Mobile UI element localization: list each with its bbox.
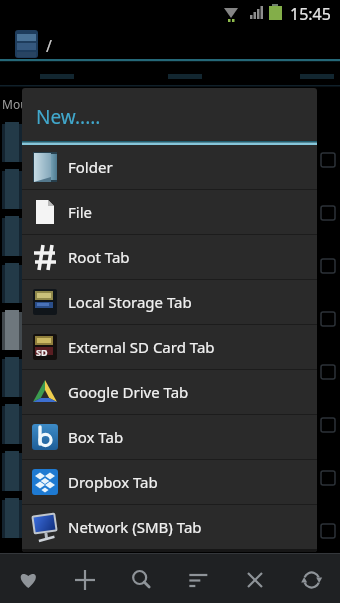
staticText: Folder <box>68 157 113 177</box>
button[interactable]: Box Tab <box>22 415 317 459</box>
button[interactable] <box>0 553 56 603</box>
staticText: 15:45 <box>290 3 331 25</box>
staticText: New..... <box>36 104 101 130</box>
button[interactable]: SD <box>22 325 317 369</box>
staticText: File <box>68 202 92 222</box>
button[interactable]: Local Storage Tab <box>22 280 317 324</box>
button[interactable]: Network (SMB) Tab <box>22 505 317 549</box>
button[interactable]: Google Drive Tab <box>22 370 317 414</box>
staticText: Dropbox Tab <box>68 472 158 492</box>
staticText: Root Tab <box>68 247 130 267</box>
button[interactable]: Dropbox Tab <box>22 460 317 504</box>
staticText: Local Storage Tab <box>68 292 192 312</box>
staticText: SD <box>36 346 48 358</box>
button[interactable]: Root Tab <box>22 235 317 279</box>
button[interactable] <box>226 553 283 603</box>
button[interactable]: Folder <box>22 145 317 189</box>
staticText: External SD Card Tab <box>68 337 215 357</box>
staticText: Network (SMB) Tab <box>68 517 202 537</box>
button[interactable]: File <box>22 190 317 234</box>
staticText: Mou <box>2 96 28 112</box>
staticText: / <box>46 35 52 57</box>
button[interactable] <box>169 553 226 603</box>
button[interactable] <box>56 553 112 603</box>
staticText: Box Tab <box>68 427 124 447</box>
staticText: Google Drive Tab <box>68 382 189 402</box>
button[interactable] <box>283 553 340 603</box>
button[interactable]: New..... <box>22 88 317 141</box>
button[interactable] <box>112 553 169 603</box>
